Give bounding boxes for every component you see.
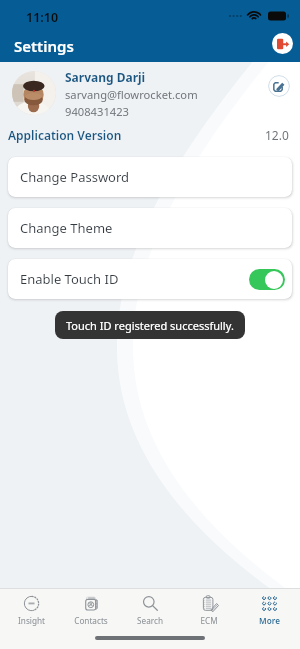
- staticText: Insight: [18, 615, 45, 626]
- button[interactable]: Contacts: [63, 593, 119, 626]
- button[interactable]: Change Password: [8, 157, 292, 197]
- staticText: Enable Touch ID: [20, 270, 119, 288]
- staticText: Change Password: [20, 168, 130, 186]
- staticText: Contacts: [74, 615, 108, 626]
- button[interactable]: Change Theme: [8, 208, 292, 248]
- staticText: Search: [137, 615, 163, 626]
- staticText: Touch ID registered successfully.: [66, 318, 234, 333]
- button[interactable]: Logout: [272, 33, 293, 54]
- button[interactable]: Search: [122, 593, 178, 626]
- button[interactable]: More: [241, 593, 297, 626]
- button[interactable]: ECM: [181, 593, 237, 626]
- staticText: Change Theme: [20, 219, 113, 237]
- staticText: sarvang@flowrocket.com: [65, 87, 198, 102]
- staticText: More: [259, 615, 280, 626]
- staticText: 9408431423: [65, 104, 129, 119]
- button[interactable]: Edit profile: [268, 75, 290, 97]
- staticText: 12.0: [265, 127, 289, 143]
- staticText: Sarvang Darji: [65, 69, 146, 85]
- staticText: 11:10: [26, 9, 59, 26]
- staticText: ECM: [200, 615, 218, 626]
- button[interactable]: Enable Touch ID: [8, 259, 292, 299]
- button[interactable]: Insight: [3, 593, 59, 626]
- staticText: Settings: [14, 36, 74, 56]
- staticText: Application Version: [8, 127, 122, 143]
- button[interactable]: Enable Touch ID toggle: [249, 269, 285, 290]
